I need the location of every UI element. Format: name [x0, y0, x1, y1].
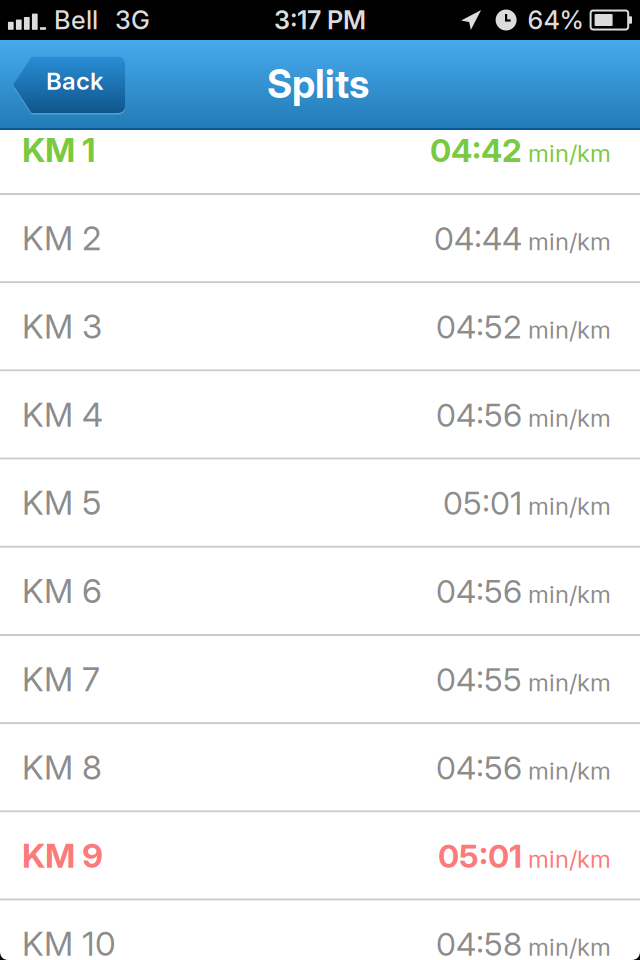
- button[interactable]: KM 4: [0, 371, 640, 458]
- staticText: KM 2: [22, 218, 101, 258]
- staticText: KM 5: [22, 482, 101, 523]
- staticText: 04:56: [436, 748, 522, 787]
- staticText: min/km: [528, 933, 611, 960]
- staticText: 3G: [115, 5, 150, 35]
- staticText: min/km: [528, 139, 611, 168]
- button[interactable]: KM 8: [0, 724, 640, 810]
- staticText: min/km: [528, 315, 611, 344]
- staticText: min/km: [528, 227, 611, 256]
- staticText: 04:56: [436, 572, 522, 611]
- staticText: min/km: [528, 492, 611, 521]
- button[interactable]: KM 6: [0, 548, 640, 634]
- staticText: KM 1: [22, 130, 96, 170]
- staticText: min/km: [528, 580, 611, 609]
- button[interactable]: Back: [11, 55, 126, 115]
- button[interactable]: KM 10: [0, 901, 640, 960]
- button[interactable]: KM 7: [0, 636, 640, 722]
- button[interactable]: KM 3: [0, 283, 640, 369]
- button[interactable]: KM 9: [0, 812, 640, 899]
- staticText: min/km: [528, 756, 611, 785]
- staticText: 05:01: [443, 484, 522, 522]
- staticText: 64%: [528, 5, 584, 35]
- staticText: 04:42: [430, 131, 522, 170]
- button[interactable]: KM 5: [0, 460, 640, 546]
- staticText: 3:17 PM: [274, 5, 366, 35]
- staticText: 04:55: [436, 660, 522, 699]
- staticText: KM 7: [22, 659, 100, 699]
- staticText: 04:52: [436, 307, 522, 346]
- staticText: min/km: [528, 403, 611, 432]
- staticText: Splits: [267, 61, 369, 107]
- staticText: KM 6: [22, 571, 102, 611]
- staticText: min/km: [528, 668, 611, 697]
- staticText: min/km: [528, 844, 611, 873]
- staticText: Bell: [54, 5, 98, 35]
- staticText: KM 8: [22, 747, 102, 787]
- staticText: Back: [46, 66, 103, 95]
- staticText: 04:44: [434, 219, 522, 258]
- staticText: 05:01: [438, 837, 522, 875]
- button[interactable]: KM 2: [0, 195, 640, 281]
- staticText: 04:58: [436, 925, 522, 960]
- staticText: KM 9: [22, 835, 103, 876]
- button[interactable]: KM 1: [0, 107, 640, 193]
- staticText: KM 3: [22, 306, 102, 346]
- staticText: KM 4: [22, 394, 103, 435]
- staticText: KM 10: [22, 923, 116, 960]
- staticText: 04:56: [436, 396, 522, 434]
